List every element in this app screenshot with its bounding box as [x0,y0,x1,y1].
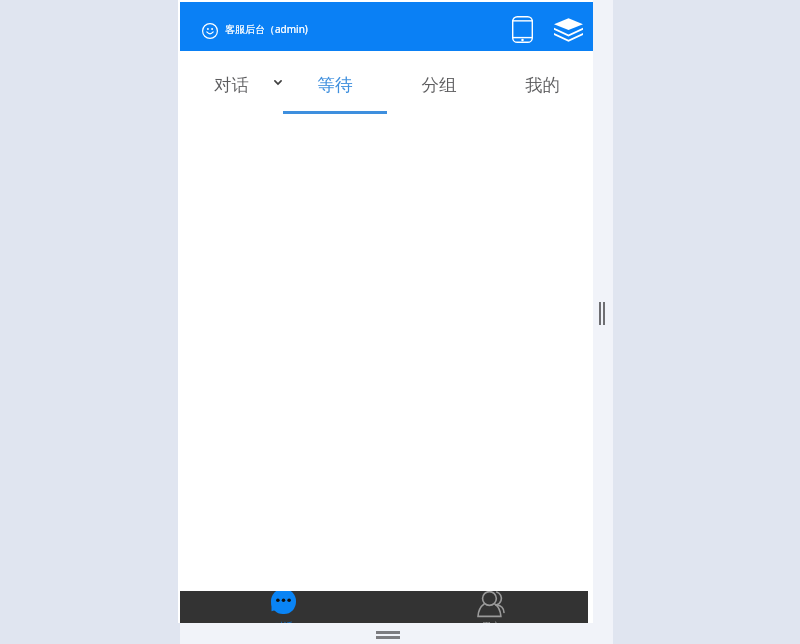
button[interactable]: 等待 [283,62,387,115]
staticText: 对话 [214,74,249,96]
button[interactable]: 分组 [387,62,491,102]
button[interactable]: 客服后台（admin) [198,10,310,43]
button[interactable]: 用户 [384,591,588,623]
staticText: 我的 [491,74,594,96]
button[interactable]: 对话 [205,62,290,102]
button[interactable]: 对话 [180,591,384,623]
staticText: 分组 [387,74,491,96]
staticText: 用户 [476,620,506,623]
button[interactable]: Layers [552,15,584,43]
staticText: 对话 [269,620,299,623]
button[interactable]: Device preview [508,15,536,43]
staticText: 客服后台（admin) [225,22,308,36]
staticText: 等待 [283,74,387,96]
button[interactable]: 我的 [491,62,594,102]
